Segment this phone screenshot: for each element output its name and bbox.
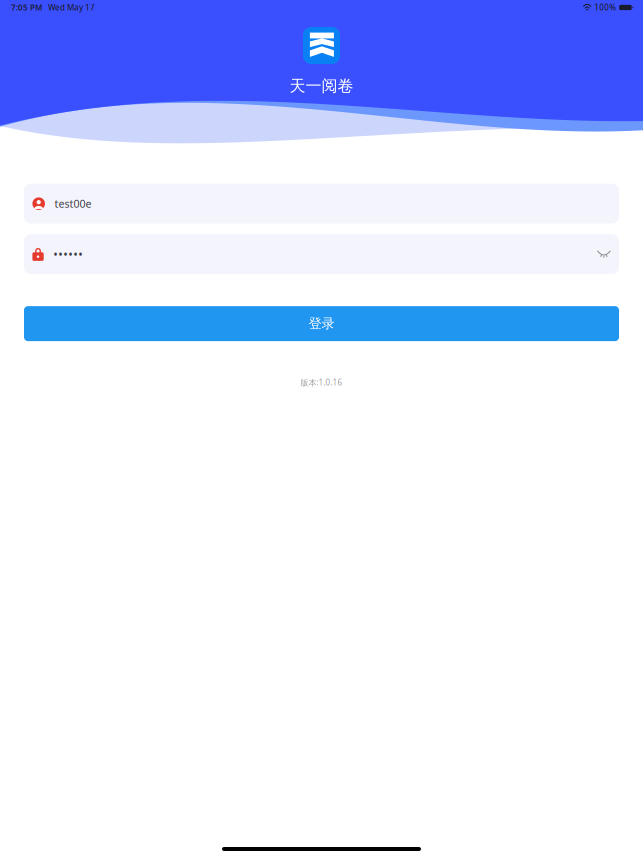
button[interactable]: Show password xyxy=(597,250,619,258)
staticText: 100% xyxy=(594,2,616,13)
staticText: 版本:1.0.16 xyxy=(300,377,342,388)
staticText: 登录 xyxy=(308,315,334,332)
staticText: •••••• xyxy=(53,246,83,262)
staticText: Wed May 17 xyxy=(42,2,95,13)
staticText: 天一阅卷 xyxy=(289,76,353,96)
staticText: 7:05 PM xyxy=(11,2,42,13)
staticText: test00e xyxy=(54,197,91,211)
button[interactable]: 登录 xyxy=(24,306,619,341)
